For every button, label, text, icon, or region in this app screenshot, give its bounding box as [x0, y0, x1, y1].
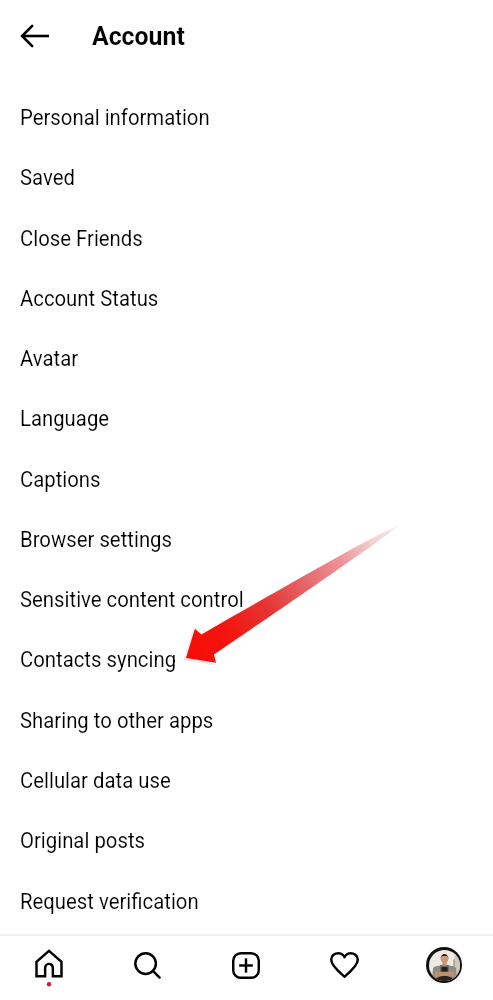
button[interactable]: Back — [7, 8, 63, 64]
staticText: Captions — [20, 467, 101, 492]
button[interactable]: Original posts — [0, 810, 493, 870]
button[interactable]: Saved — [0, 147, 493, 207]
button[interactable]: Home — [0, 936, 98, 1000]
staticText: Contacts syncing — [20, 647, 177, 672]
button[interactable]: Captions — [0, 449, 493, 509]
staticText: Browser settings — [20, 527, 172, 552]
button[interactable]: Personal information — [0, 87, 493, 147]
staticText: Saved — [20, 165, 76, 190]
button[interactable]: Sensitive content control — [0, 569, 493, 629]
button[interactable]: Account Status — [0, 268, 493, 328]
staticText: Request verification — [20, 889, 200, 914]
staticText: Original posts — [20, 828, 146, 853]
button[interactable]: Sharing to other apps — [0, 690, 493, 750]
button[interactable]: Activity — [295, 936, 394, 1000]
staticText: Close Friends — [20, 226, 143, 251]
button[interactable]: Language — [0, 388, 493, 448]
button[interactable]: Cellular data use — [0, 750, 493, 810]
button[interactable]: Request verification — [0, 871, 493, 931]
button[interactable]: Avatar — [0, 328, 493, 388]
staticText: Avatar — [20, 346, 79, 371]
button[interactable]: Create — [196, 936, 295, 1000]
button[interactable]: Browser settings — [0, 509, 493, 569]
button[interactable]: Profile — [394, 936, 493, 1000]
staticText: Account Status — [20, 286, 159, 311]
staticText: Account — [92, 21, 186, 51]
staticText: Cellular data use — [20, 768, 171, 793]
staticText: Personal information — [20, 105, 210, 130]
staticText: Sensitive content control — [20, 587, 244, 612]
staticText: Sharing to other apps — [20, 708, 214, 733]
button[interactable]: Search — [98, 936, 196, 1000]
button[interactable]: Contacts syncing — [0, 629, 493, 689]
button[interactable]: Close Friends — [0, 208, 493, 268]
staticText: Language — [20, 406, 110, 431]
